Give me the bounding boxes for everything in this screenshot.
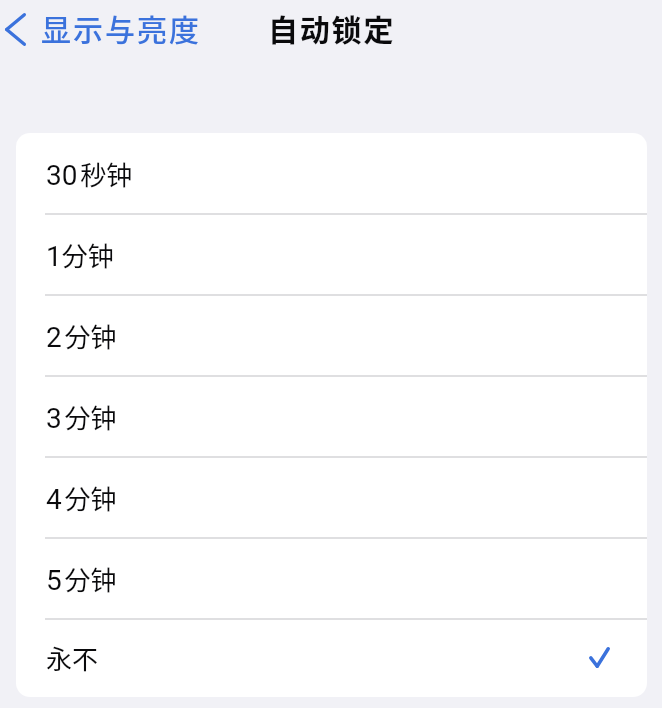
button[interactable]: 1分钟 — [16, 214, 647, 295]
staticText: 3 分钟 — [46, 398, 117, 436]
staticText: 2 分钟 — [46, 317, 117, 355]
staticText: 4 分钟 — [46, 479, 117, 517]
staticText: 1分钟 — [46, 236, 114, 274]
button[interactable]: 5 分钟 — [16, 538, 647, 619]
button[interactable]: 永不 — [16, 619, 647, 697]
staticText: 自动锁定 — [268, 6, 396, 49]
button[interactable]: 2 分钟 — [16, 295, 647, 376]
staticText: 永不 — [46, 639, 99, 677]
button[interactable]: 30 秒钟 — [16, 133, 647, 214]
button[interactable]: 4 分钟 — [16, 457, 647, 538]
button[interactable]: 返回 显示与亮度 — [0, 0, 211, 58]
staticText: 5 分钟 — [46, 560, 117, 598]
button[interactable]: 3 分钟 — [16, 376, 647, 457]
staticText: 30 秒钟 — [46, 155, 133, 193]
staticText: 显示与亮度 — [41, 6, 201, 49]
